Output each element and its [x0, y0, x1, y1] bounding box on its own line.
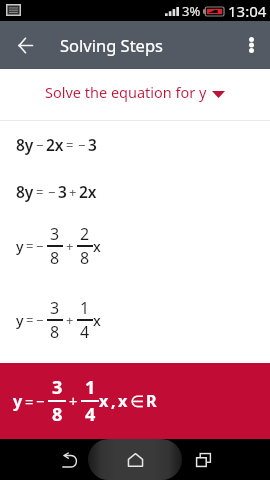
button[interactable]: y: [0, 363, 270, 439]
staticText: 3: [50, 223, 60, 245]
staticText: 13:04: [228, 1, 267, 21]
staticText: 8: [80, 247, 90, 269]
button[interactable]: More options: [235, 29, 267, 61]
staticText: 2x: [46, 134, 64, 155]
staticText: 8: [50, 247, 60, 269]
staticText: 4: [85, 402, 96, 427]
staticText: x: [118, 390, 128, 412]
staticText: ,: [111, 390, 116, 412]
staticText: 1: [80, 297, 90, 319]
staticText: 4: [80, 321, 90, 343]
button[interactable]: 8y: [0, 167, 270, 216]
button[interactable]: Back: [49, 440, 89, 480]
staticText: +: [66, 311, 74, 329]
staticText: −: [48, 183, 56, 201]
staticText: −: [36, 311, 44, 329]
staticText: 8: [52, 402, 63, 427]
button[interactable]: Home: [115, 440, 155, 480]
staticText: 3%: [182, 2, 201, 20]
staticText: 1: [85, 375, 96, 400]
staticText: 3: [58, 181, 67, 202]
staticText: =: [66, 136, 74, 154]
staticText: x: [93, 311, 101, 330]
staticText: 3: [52, 375, 63, 400]
staticText: 8y: [16, 134, 34, 155]
staticText: +: [66, 237, 74, 255]
staticText: y: [16, 311, 24, 330]
staticText: Solve the equation for y: [45, 82, 207, 102]
staticText: +: [69, 183, 77, 201]
staticText: x: [93, 237, 101, 256]
staticText: Solving Steps: [60, 34, 163, 56]
staticText: =: [25, 391, 34, 411]
staticText: −: [78, 136, 86, 154]
staticText: −: [36, 237, 44, 255]
staticText: x: [99, 390, 109, 412]
staticText: 3: [88, 134, 97, 155]
button[interactable]: Recent apps: [183, 440, 223, 480]
button[interactable]: Solve the equation for y: [0, 69, 270, 120]
staticText: =: [26, 237, 34, 255]
staticText: 8: [50, 321, 60, 343]
button[interactable]: y: [0, 276, 270, 363]
button[interactable]: y: [0, 216, 270, 276]
staticText: ∈: [130, 392, 145, 411]
staticText: 8y: [16, 181, 34, 202]
staticText: 2x: [79, 181, 97, 202]
button[interactable]: 8y: [0, 121, 270, 167]
staticText: +: [69, 391, 78, 411]
staticText: 2: [80, 223, 90, 245]
staticText: =: [36, 183, 44, 201]
staticText: R: [146, 390, 157, 412]
button[interactable]: Navigate up: [9, 29, 41, 61]
staticText: 3: [50, 297, 60, 319]
staticText: −: [36, 136, 44, 154]
staticText: =: [26, 311, 34, 329]
staticText: y: [16, 237, 24, 256]
staticText: −: [36, 391, 45, 411]
staticText: y: [13, 390, 23, 412]
